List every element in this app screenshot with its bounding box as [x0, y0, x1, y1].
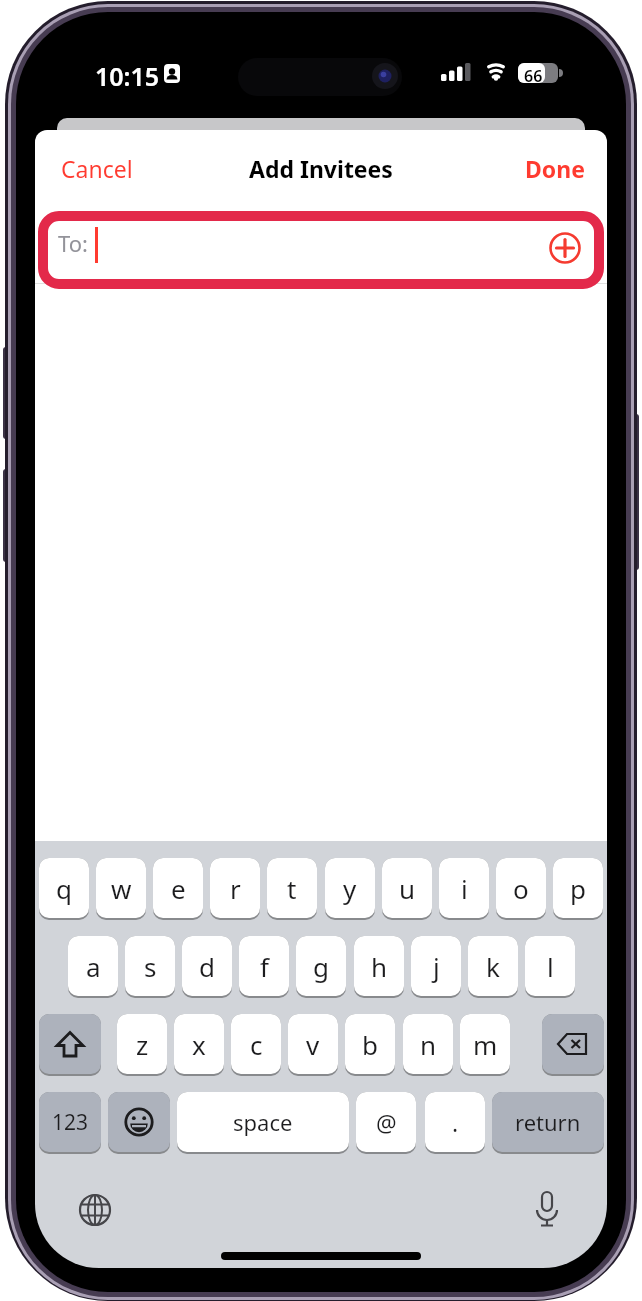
- staticText: h: [371, 949, 388, 984]
- staticText: return: [515, 1107, 581, 1137]
- button[interactable]: e: [153, 858, 203, 918]
- button[interactable]: .: [425, 1092, 485, 1152]
- button[interactable]: d: [182, 936, 232, 996]
- staticText: m: [473, 1027, 498, 1062]
- button[interactable]: Cancel: [61, 153, 133, 184]
- button[interactable]: h: [354, 936, 404, 996]
- button[interactable]: f: [239, 936, 289, 996]
- staticText: d: [199, 949, 215, 984]
- staticText: b: [362, 1027, 378, 1062]
- staticText: space: [233, 1107, 293, 1137]
- button[interactable]: z: [117, 1014, 167, 1074]
- staticText: 66: [524, 65, 543, 87]
- staticText: y: [343, 871, 357, 906]
- staticText: f: [260, 949, 269, 984]
- button[interactable]: space: [177, 1092, 349, 1152]
- staticText: @: [376, 1107, 397, 1138]
- staticText: q: [56, 871, 72, 906]
- button[interactable]: Done: [525, 153, 585, 184]
- staticText: v: [306, 1027, 320, 1062]
- staticText: a: [86, 949, 101, 984]
- staticText: i: [461, 871, 468, 906]
- staticText: To:: [58, 228, 88, 258]
- button[interactable]: q: [39, 858, 89, 918]
- staticText: p: [570, 871, 586, 906]
- button[interactable]: [77, 1192, 113, 1228]
- button[interactable]: y: [325, 858, 375, 918]
- staticText: n: [420, 1027, 437, 1062]
- staticText: r: [230, 871, 241, 906]
- button[interactable]: g: [296, 936, 346, 996]
- button[interactable]: [39, 1014, 101, 1074]
- staticText: e: [171, 871, 186, 906]
- staticText: t: [287, 871, 297, 906]
- button[interactable]: 123: [39, 1092, 101, 1152]
- button[interactable]: t: [267, 858, 317, 918]
- staticText: l: [547, 949, 554, 984]
- button[interactable]: [529, 1190, 565, 1230]
- button[interactable]: @: [356, 1092, 416, 1152]
- staticText: c: [250, 1027, 263, 1062]
- button[interactable]: r: [210, 858, 260, 918]
- button[interactable]: c: [231, 1014, 281, 1074]
- staticText: o: [513, 871, 529, 906]
- staticText: j: [433, 949, 440, 984]
- staticText: u: [399, 871, 416, 906]
- staticText: x: [192, 1027, 206, 1062]
- button[interactable]: u: [382, 858, 432, 918]
- button[interactable]: To:: [35, 212, 607, 288]
- button[interactable]: p: [553, 858, 603, 918]
- button[interactable]: i: [439, 858, 489, 918]
- button[interactable]: [108, 1092, 170, 1152]
- button[interactable]: m: [460, 1014, 510, 1074]
- button[interactable]: return: [492, 1092, 604, 1152]
- button[interactable]: l: [525, 936, 575, 996]
- button[interactable]: o: [496, 858, 546, 918]
- button[interactable]: [542, 1014, 604, 1074]
- staticText: z: [136, 1027, 149, 1062]
- button[interactable]: a: [68, 936, 118, 996]
- staticText: .: [452, 1107, 459, 1138]
- staticText: 123: [52, 1108, 89, 1137]
- button[interactable]: x: [174, 1014, 224, 1074]
- button[interactable]: s: [125, 936, 175, 996]
- staticText: Done: [525, 153, 585, 184]
- staticText: Cancel: [61, 153, 133, 184]
- staticText: g: [313, 949, 329, 984]
- button[interactable]: b: [345, 1014, 395, 1074]
- staticText: k: [486, 949, 500, 984]
- button[interactable]: j: [411, 936, 461, 996]
- button[interactable]: k: [468, 936, 518, 996]
- button[interactable]: v: [288, 1014, 338, 1074]
- staticText: Add Invitees: [249, 153, 393, 183]
- button[interactable]: n: [403, 1014, 453, 1074]
- staticText: s: [144, 949, 157, 984]
- staticText: w: [111, 871, 132, 906]
- button[interactable]: w: [96, 858, 146, 918]
- staticText: 10:15: [95, 59, 160, 93]
